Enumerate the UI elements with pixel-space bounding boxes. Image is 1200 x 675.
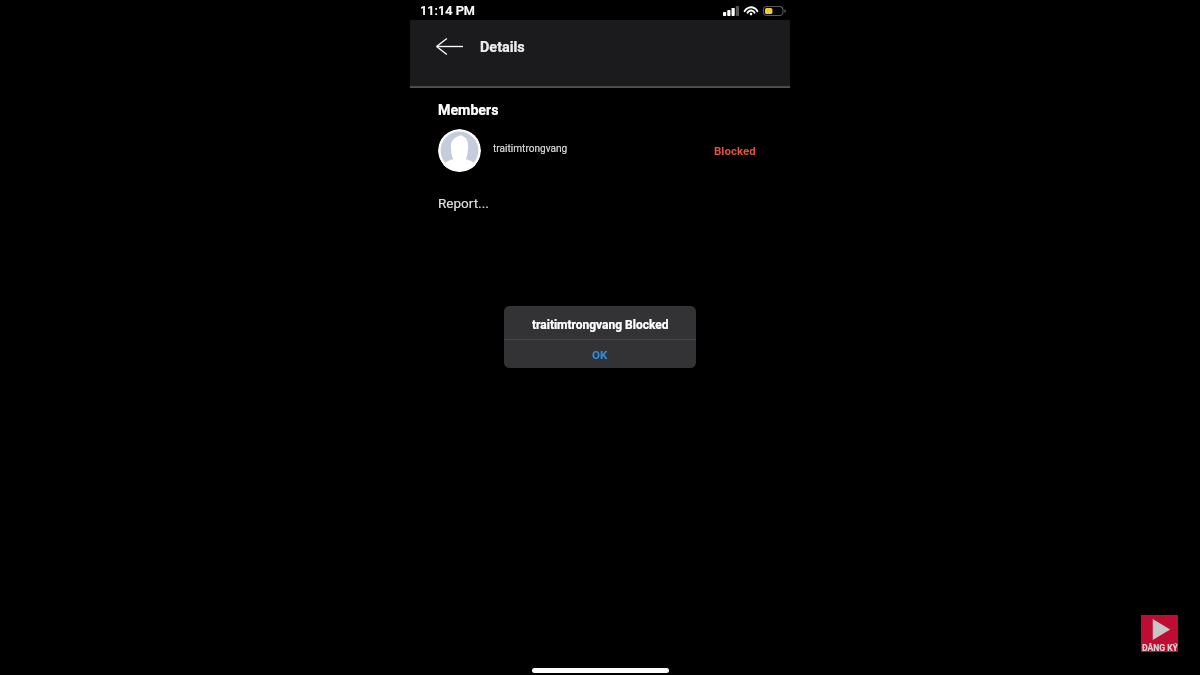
staticText: 11:14 PM	[420, 3, 476, 18]
staticText: Blocked	[714, 144, 756, 157]
button[interactable]: Subscribe	[1141, 615, 1178, 652]
button[interactable]: Back	[432, 29, 466, 63]
staticText: Report...	[438, 195, 489, 211]
staticText: traitimtrongvang	[493, 143, 568, 155]
staticText: traitimtrongvang Blocked	[532, 318, 669, 332]
staticText: ĐĂNG KÝ	[1142, 643, 1178, 652]
staticText: Details	[480, 39, 525, 56]
button[interactable]: Report...	[410, 195, 790, 217]
staticText: OK	[592, 348, 608, 361]
staticText: Members	[438, 102, 499, 119]
button[interactable]: OK	[504, 340, 696, 368]
button[interactable]: traitimtrongvang	[410, 124, 790, 176]
